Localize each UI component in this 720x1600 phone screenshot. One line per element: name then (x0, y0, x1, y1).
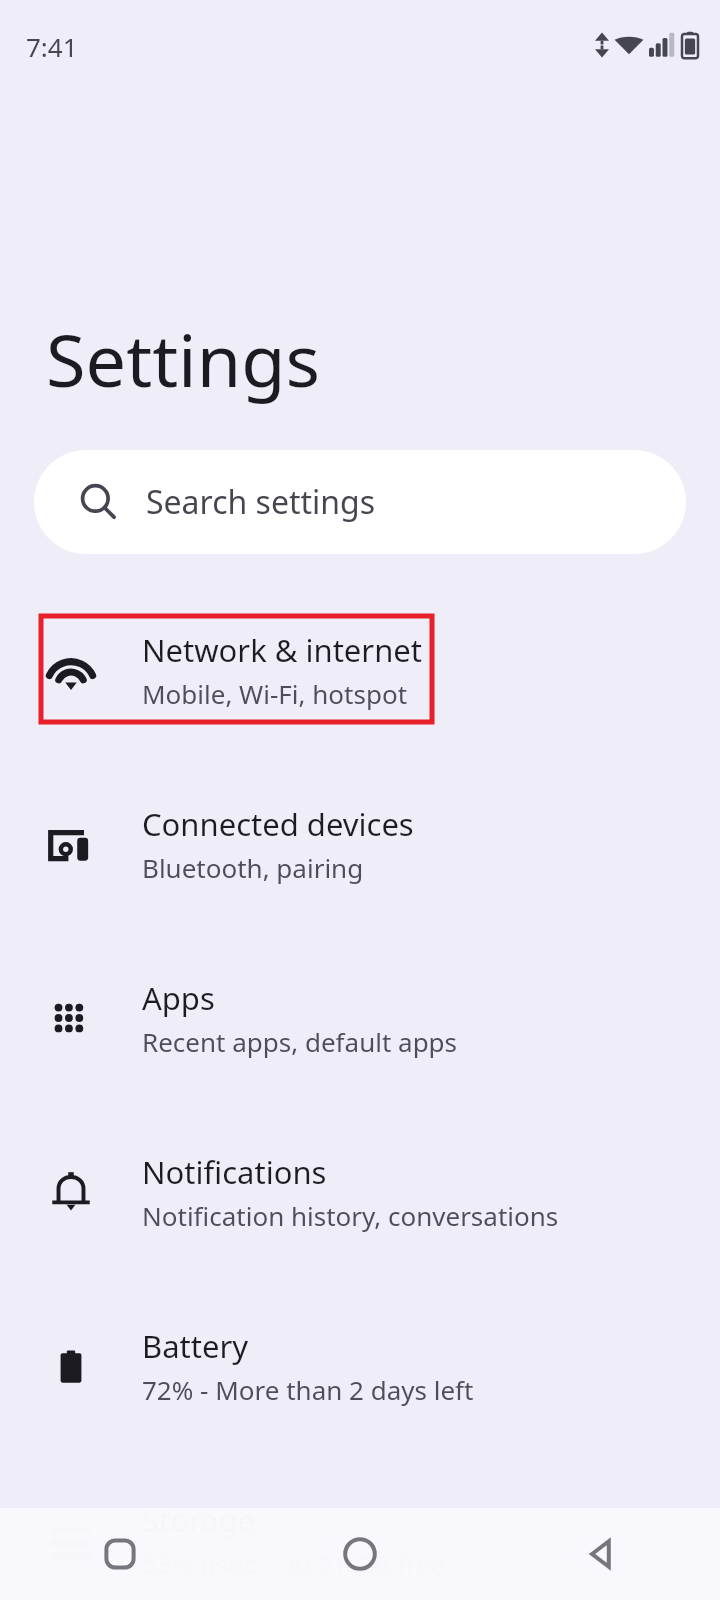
button[interactable]: Recent apps (0, 1508, 240, 1600)
button[interactable]: Storage (0, 1482, 720, 1598)
button[interactable]: Connected devices (0, 786, 720, 902)
staticText: Settings (46, 310, 320, 408)
staticText: Battery (142, 1325, 249, 1367)
button[interactable]: Search settings (34, 450, 686, 554)
staticText: Notification history, conversations (142, 1198, 559, 1233)
button[interactable]: Battery (0, 1308, 720, 1424)
staticText: Notifications (142, 1151, 327, 1193)
button[interactable]: Apps (0, 960, 720, 1076)
staticText: Network & internet (142, 629, 422, 671)
button[interactable]: Back (480, 1508, 720, 1600)
staticText: Mobile, Wi-Fi, hotspot (142, 676, 408, 711)
staticText: 53% used - 30.21 GB free (142, 1546, 446, 1581)
button[interactable]: Home (240, 1508, 480, 1600)
staticText: 7:41 (26, 29, 78, 64)
staticText: 72% - More than 2 days left (142, 1372, 474, 1407)
staticText: Apps (142, 977, 215, 1019)
staticText: Storage (142, 1499, 256, 1541)
button[interactable]: Network & internet (0, 612, 720, 728)
button[interactable]: Notifications (0, 1134, 720, 1250)
staticText: Connected devices (142, 803, 414, 845)
staticText: Search settings (146, 480, 376, 524)
staticText: Recent apps, default apps (142, 1024, 458, 1059)
staticText: Bluetooth, pairing (142, 850, 364, 885)
